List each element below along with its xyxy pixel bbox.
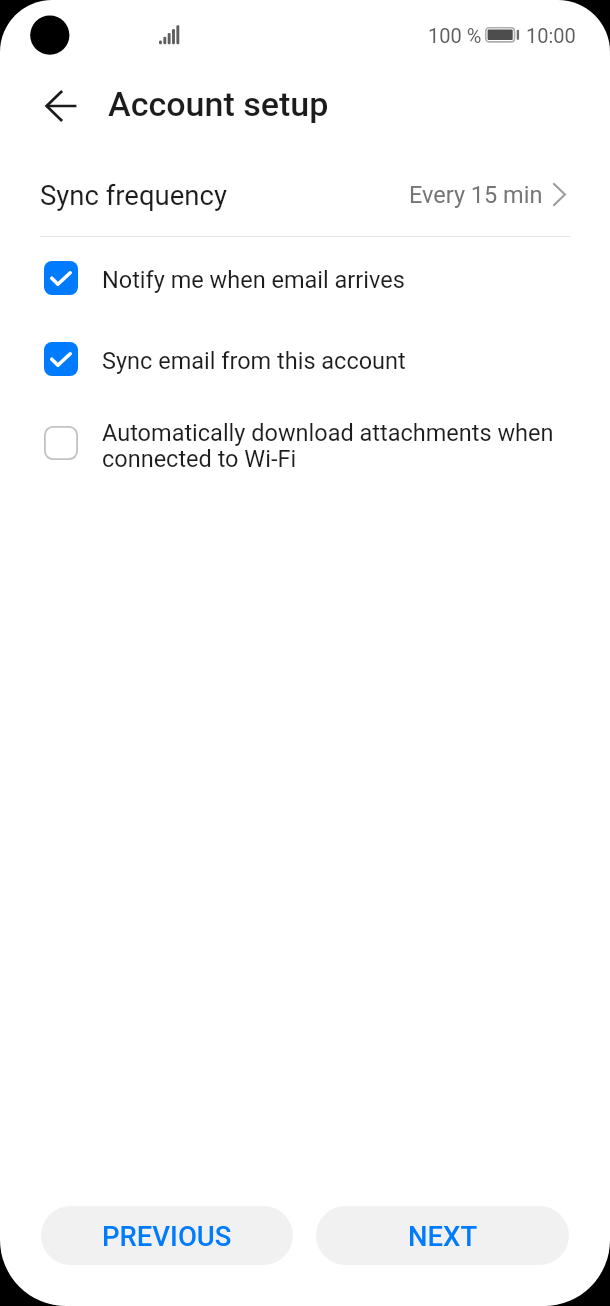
button[interactable]: Navigate up bbox=[17, 62, 105, 150]
staticText: Sync frequency bbox=[40, 179, 227, 211]
staticText: Every 15 min bbox=[409, 181, 543, 209]
staticText: PREVIOUS bbox=[102, 1220, 232, 1252]
button[interactable]: Sync frequency bbox=[0, 148, 610, 242]
staticText: Sync email from this account bbox=[102, 348, 406, 374]
staticText: Automatically download attachments when … bbox=[102, 420, 570, 472]
button[interactable]: NEXT bbox=[316, 1206, 569, 1265]
staticText: Account setup bbox=[108, 84, 329, 124]
button[interactable]: PREVIOUS bbox=[41, 1206, 293, 1265]
staticText: 100 % bbox=[428, 24, 482, 47]
staticText: Notify me when email arrives bbox=[102, 267, 405, 293]
staticText: NEXT bbox=[408, 1220, 478, 1252]
staticText: 10:00 bbox=[526, 24, 576, 47]
button[interactable]: Notify me when email arrives bbox=[0, 239, 610, 317]
button[interactable]: Sync email from this account bbox=[0, 320, 610, 398]
button[interactable]: Automatically download attachments when … bbox=[0, 404, 610, 482]
